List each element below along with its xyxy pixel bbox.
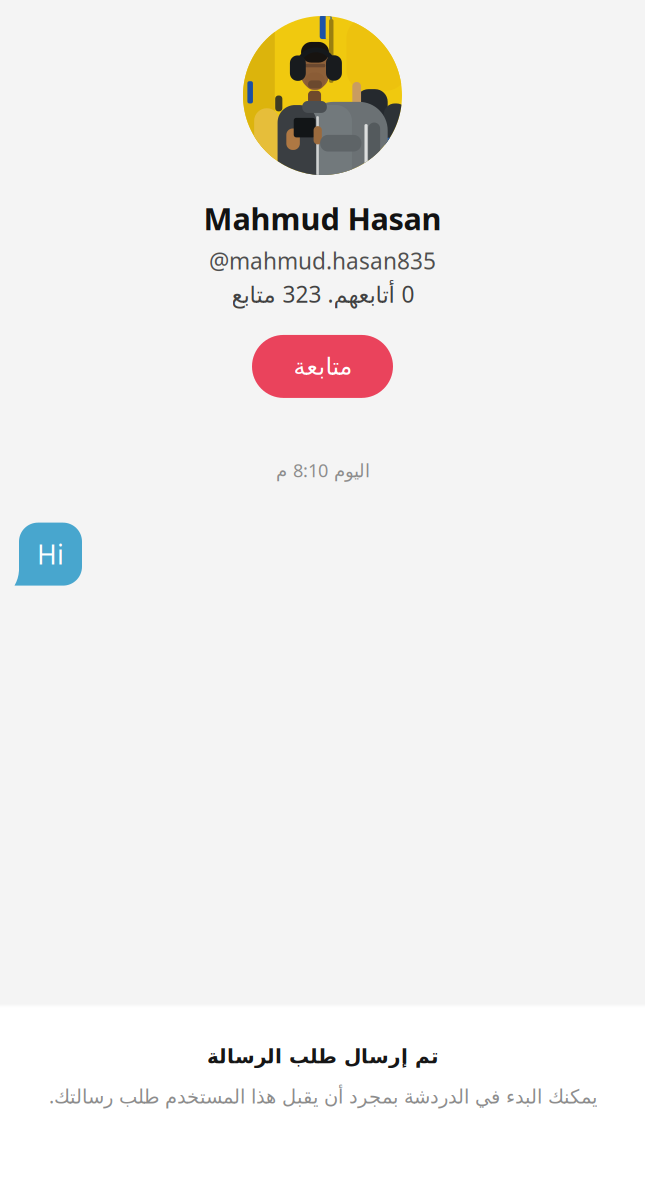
staticText: @mahmud.hasan835 — [209, 246, 436, 276]
staticText: تم إرسال طلب الرسالة — [206, 1045, 438, 1068]
staticText: اليوم 8:10 م — [275, 458, 369, 483]
staticText: Hi — [37, 536, 64, 572]
staticText: يمكنك البدء في الدردشة بمجرد أن يقبل هذا… — [48, 1083, 596, 1109]
staticText: متابعة — [293, 352, 352, 380]
button[interactable]: متابعة — [252, 335, 393, 398]
staticText: 0 أتابعهم. 323 متابع — [231, 279, 414, 309]
staticText: Mahmud Hasan — [203, 198, 441, 239]
